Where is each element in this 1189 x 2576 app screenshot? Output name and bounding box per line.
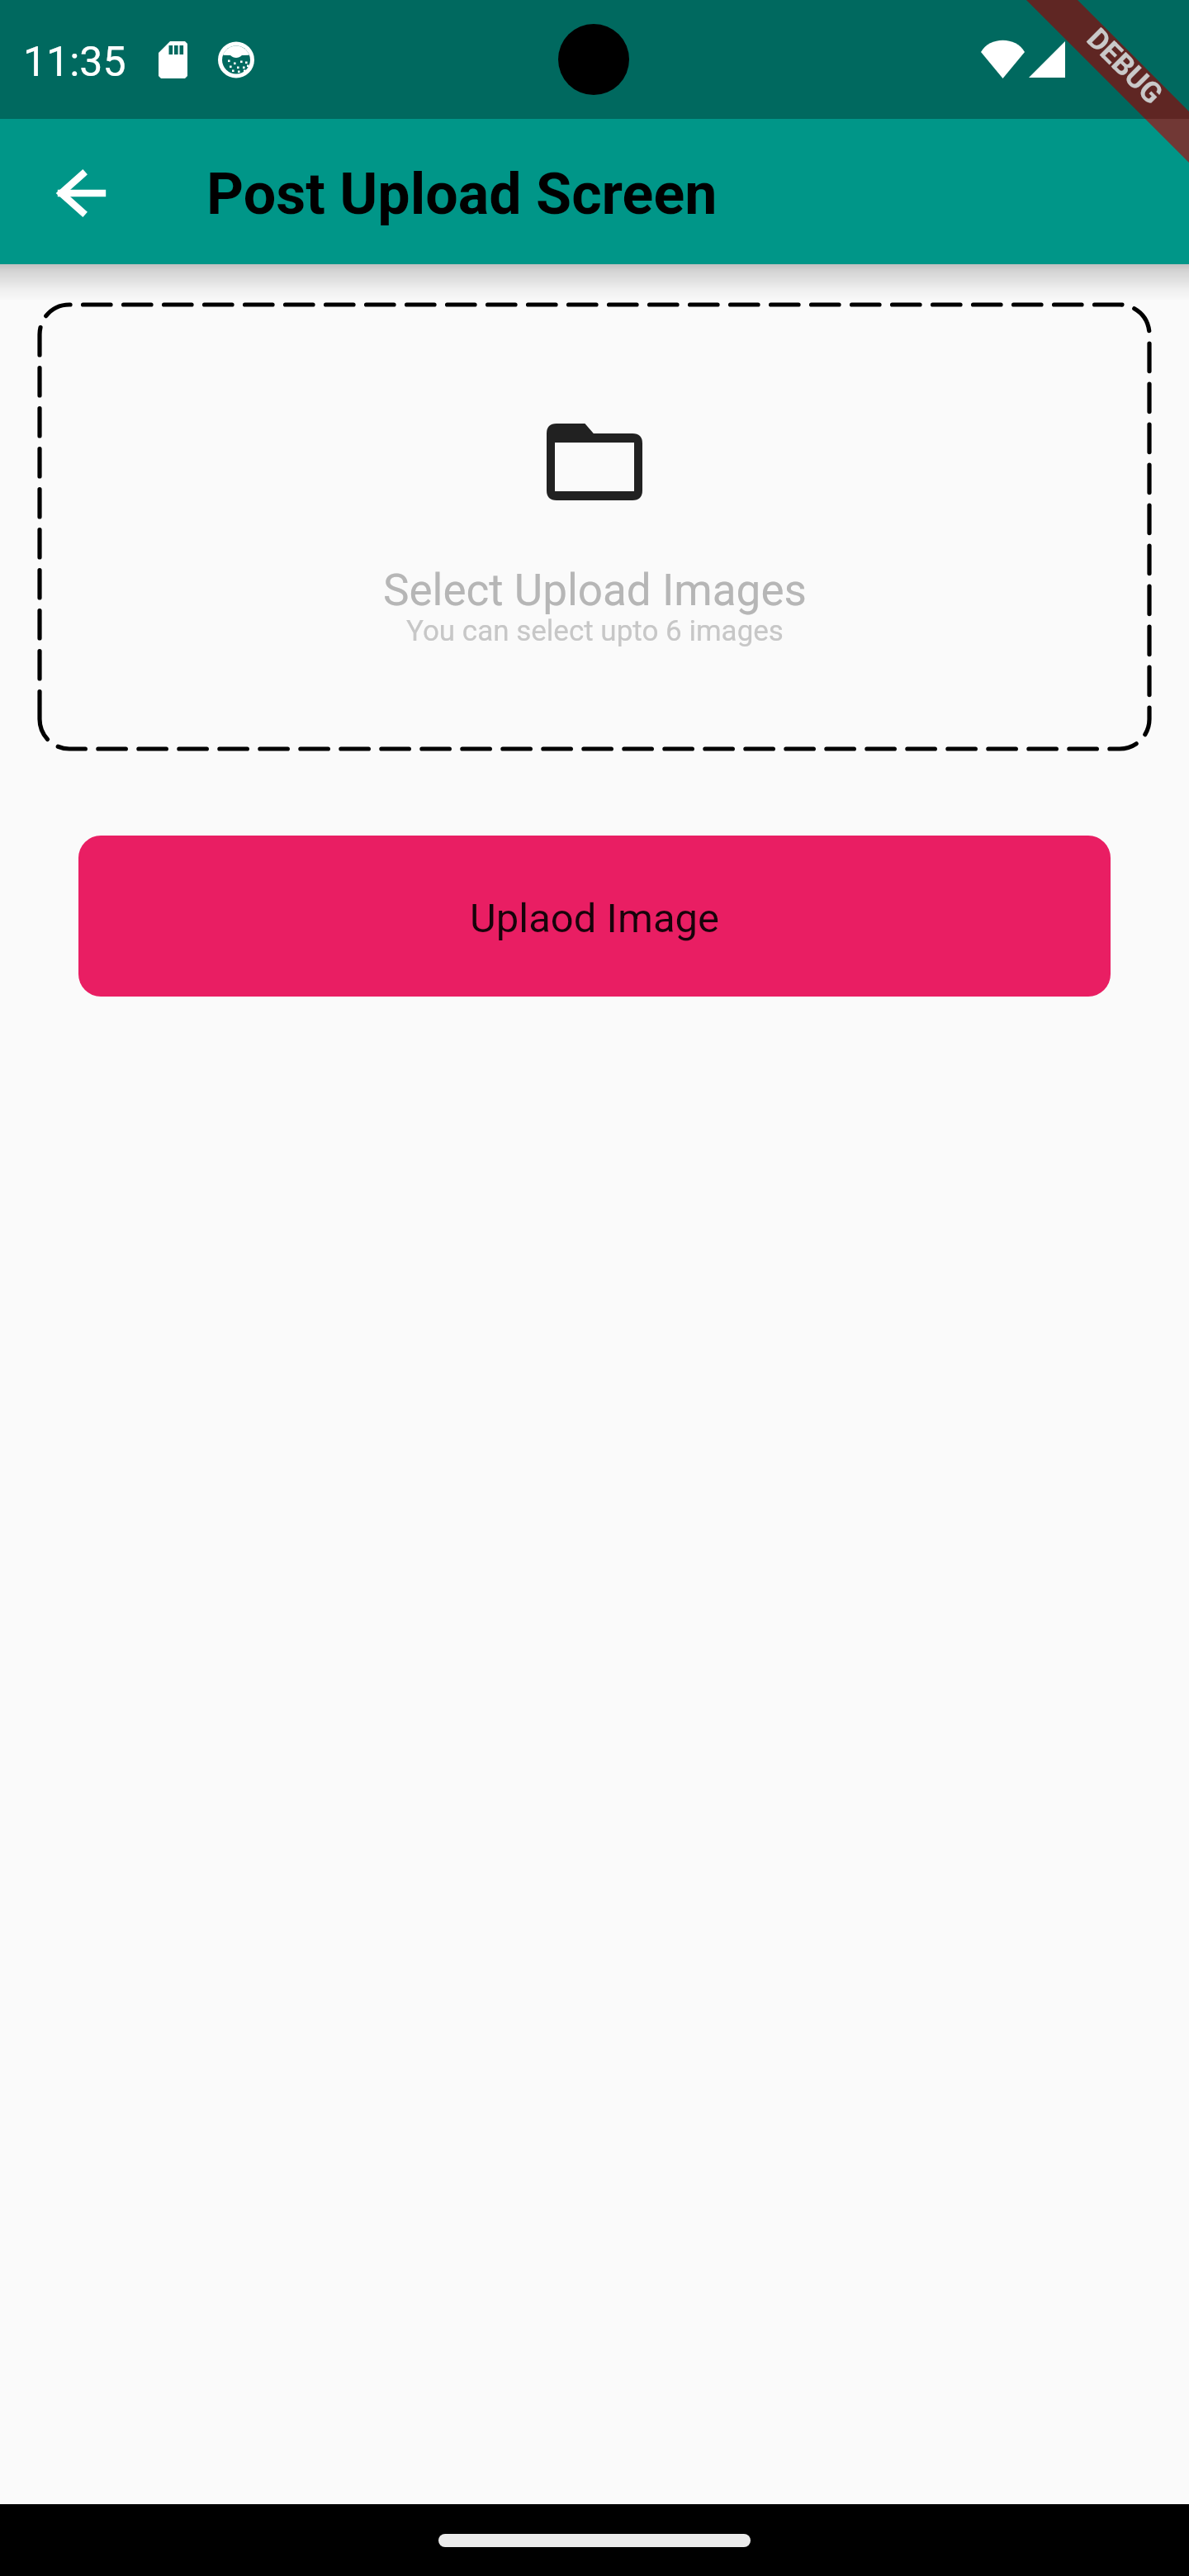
- staticText: 11:35: [23, 38, 126, 87]
- staticText: Uplaod Image: [470, 895, 720, 942]
- staticText: You can select upto 6 images: [406, 614, 784, 648]
- staticText: DEBUG: [1080, 22, 1169, 111]
- staticText: Post Upload Screen: [206, 160, 718, 228]
- staticText: Select Upload Images: [383, 565, 807, 616]
- button[interactable]: Back: [35, 145, 130, 241]
- button[interactable]: Uplaod Image: [78, 836, 1111, 997]
- button[interactable]: Select Upload Images: [40, 305, 1149, 749]
